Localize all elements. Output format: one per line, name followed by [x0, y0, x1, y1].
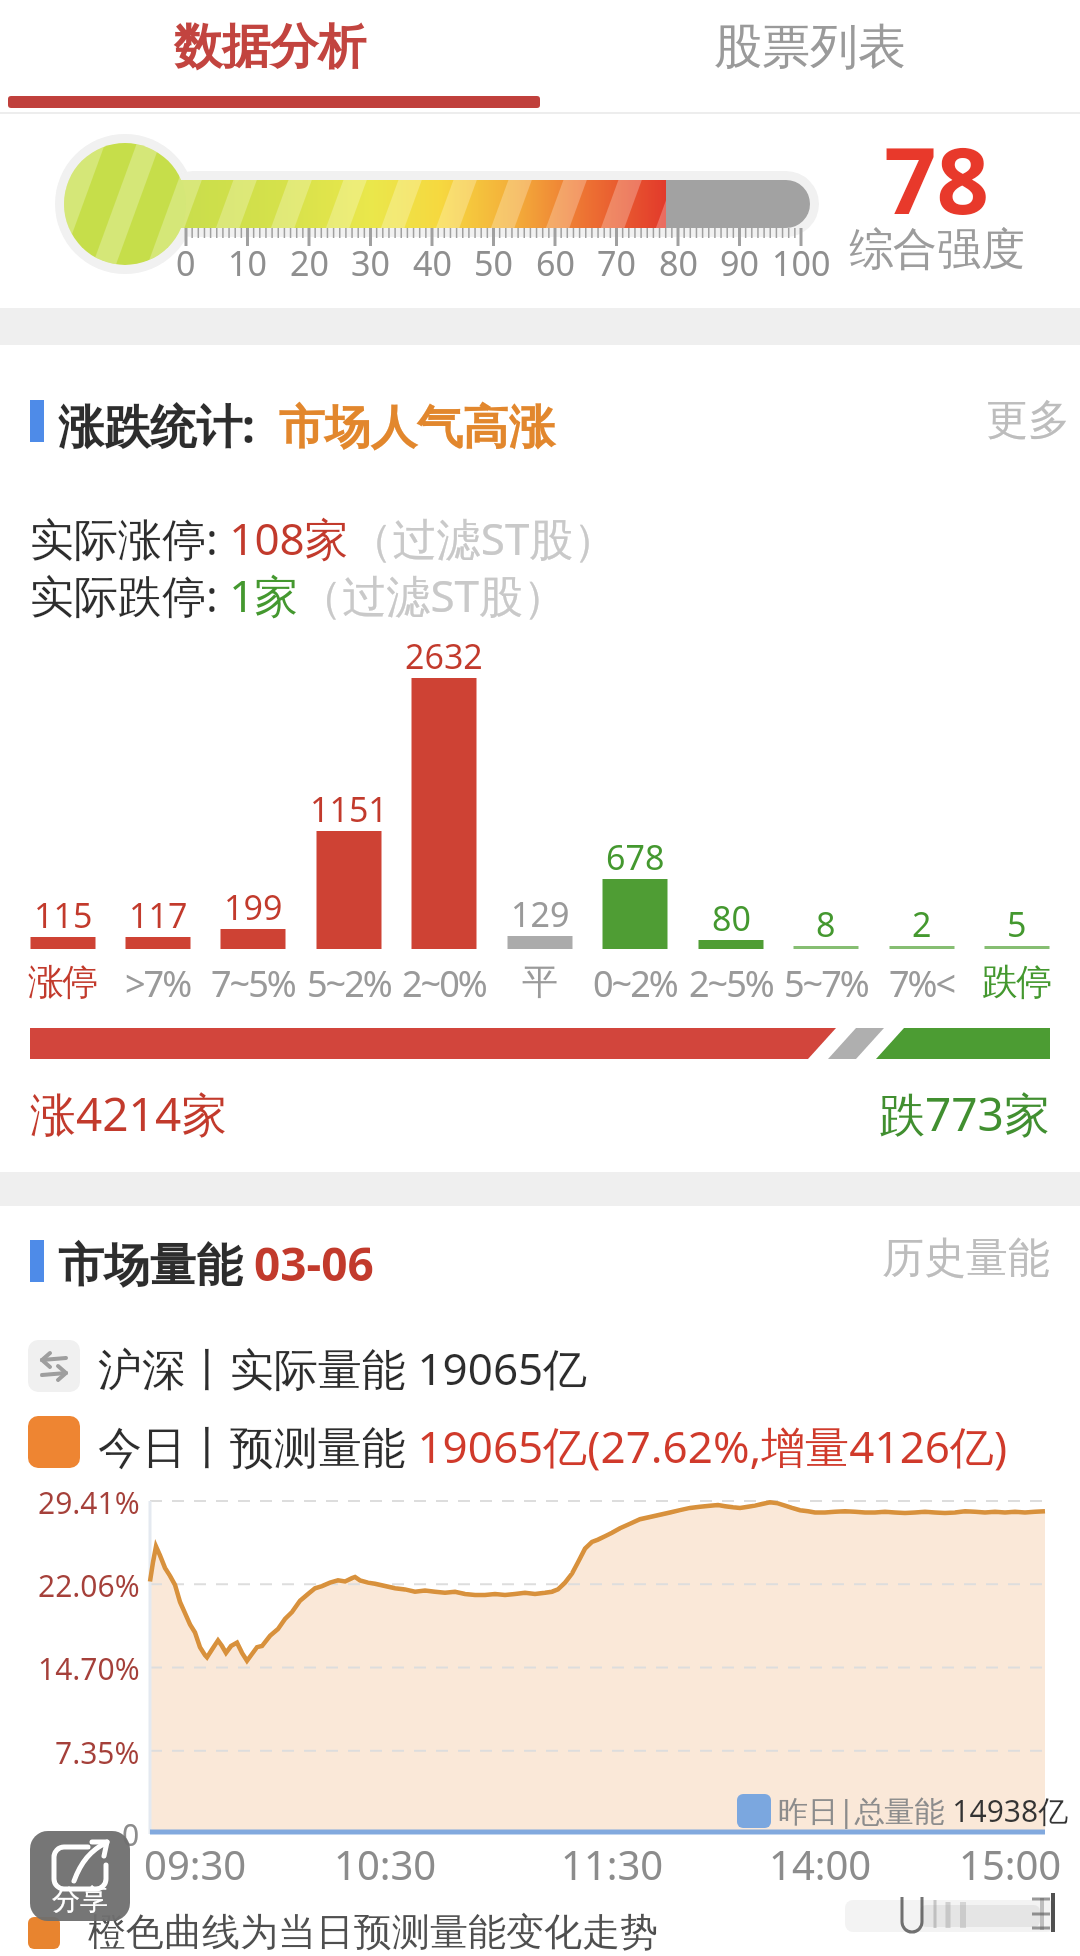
staticText: 2~0% — [402, 959, 486, 1008]
staticText: 7~5% — [211, 959, 295, 1008]
staticText: 0 — [176, 240, 196, 286]
staticText: 70 — [597, 240, 636, 286]
staticText: 5~7% — [784, 959, 868, 1008]
staticText: 更多 — [986, 394, 1070, 447]
button[interactable]: 更多 — [930, 385, 1070, 455]
staticText: 0~2% — [593, 959, 677, 1008]
button[interactable]: 数据分析 — [0, 0, 540, 94]
staticText: 15:00 — [959, 1837, 1062, 1891]
staticText: 40 — [413, 240, 452, 286]
staticText: 1151 — [310, 786, 388, 832]
staticText: 80 — [712, 895, 751, 941]
staticText: 2 — [912, 901, 932, 947]
staticText: 数据分析 — [174, 17, 366, 77]
staticText: 90 — [720, 240, 759, 286]
staticText: 0 — [122, 1814, 140, 1855]
staticText: 50 — [474, 240, 513, 286]
staticText: 涨4214家 — [30, 1082, 228, 1145]
staticText: 5 — [1007, 901, 1027, 947]
staticText: 7%< — [889, 959, 955, 1008]
staticText: 10:30 — [334, 1837, 437, 1891]
staticText: 涨跌统计: 市场人气高涨 — [58, 394, 555, 457]
staticText: 跌停 — [983, 959, 1051, 1004]
staticText: 100 — [772, 240, 831, 286]
staticText: 今日丨预测量能 19065亿(27.62%,增量4126亿) — [98, 1416, 1008, 1476]
staticText: 分享 — [52, 1882, 108, 1917]
staticText: 11:30 — [561, 1837, 664, 1891]
button[interactable]: 历史量能 — [860, 1225, 1050, 1291]
staticText: 7.35% — [55, 1732, 140, 1773]
staticText: 22.06% — [38, 1565, 140, 1606]
staticText: 沪深丨实际量能 19065亿 — [98, 1338, 588, 1398]
staticText: 涨停 — [29, 959, 97, 1004]
staticText: >7% — [125, 959, 191, 1008]
staticText: 30 — [351, 240, 390, 286]
staticText: 实际涨停: 108家（过滤ST股） — [30, 508, 618, 568]
staticText: 历史量能 — [882, 1232, 1050, 1285]
staticText: 129 — [511, 891, 570, 937]
staticText: 115 — [34, 892, 93, 938]
staticText: 14.70% — [38, 1648, 140, 1689]
staticText: 2632 — [405, 633, 483, 679]
staticText: 5~2% — [307, 959, 391, 1008]
staticText: 14:00 — [769, 1837, 872, 1891]
staticText: 平 — [523, 959, 557, 1004]
button[interactable]: 分享 — [30, 1831, 130, 1921]
staticText: 综合强度 — [849, 222, 1025, 277]
staticText: 10 — [228, 240, 267, 286]
staticText: 实际跌停: 1家（过滤ST股） — [30, 565, 568, 625]
staticText: 2~5% — [689, 959, 773, 1008]
staticText: 09:30 — [144, 1837, 247, 1891]
staticText: 80 — [659, 240, 698, 286]
staticText: 199 — [224, 884, 283, 930]
staticText: 昨日|总量能 14938亿 — [778, 1790, 1069, 1831]
staticText: 29.41% — [38, 1482, 140, 1523]
staticText: 678 — [606, 834, 665, 880]
staticText: 117 — [129, 892, 188, 938]
staticText: 橙色曲线为当日预测量能变化走势 — [88, 1908, 658, 1956]
staticText: 20 — [290, 240, 329, 286]
button[interactable]: 股票列表 — [540, 0, 1080, 94]
staticText: 60 — [536, 240, 575, 286]
staticText: 跌773家 — [879, 1082, 1050, 1145]
staticText: 8 — [816, 901, 836, 947]
staticText: 78 — [884, 116, 990, 241]
staticText: 股票列表 — [714, 17, 906, 77]
staticText: 市场量能 03-06 — [58, 1232, 374, 1295]
